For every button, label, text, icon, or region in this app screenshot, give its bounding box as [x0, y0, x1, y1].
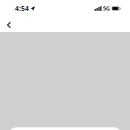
button[interactable]: List item — [7, 127, 123, 130]
staticText: 5G — [103, 5, 110, 12]
staticText: 4:54 — [15, 4, 29, 13]
button[interactable]: Back — [2, 16, 16, 33]
